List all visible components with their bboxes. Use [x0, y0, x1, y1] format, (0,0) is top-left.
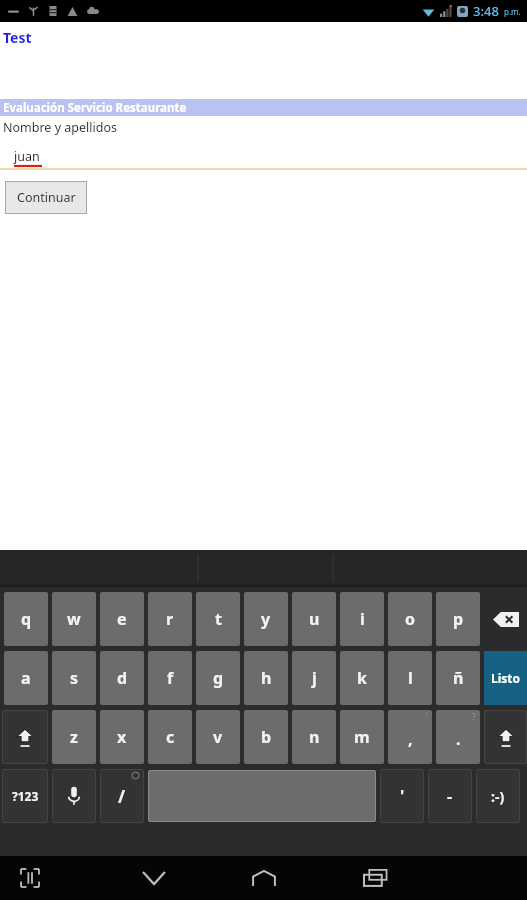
button[interactable]: f	[148, 651, 192, 705]
button[interactable]: Shift	[2, 710, 48, 764]
button[interactable]: y	[244, 592, 288, 646]
staticText: '	[400, 785, 405, 807]
staticText: .	[456, 728, 461, 750]
button[interactable]: m	[340, 710, 384, 764]
button[interactable]: Listo	[484, 651, 527, 705]
staticText: ñ	[453, 667, 464, 689]
staticText: /	[118, 785, 126, 808]
button[interactable]: '	[388, 710, 432, 764]
staticText: m	[354, 726, 370, 748]
button[interactable]: a	[4, 651, 48, 705]
staticText: h	[261, 667, 272, 689]
staticText: n	[309, 726, 320, 748]
staticText: x	[117, 726, 127, 748]
staticText: :-)	[491, 787, 505, 806]
staticText: d	[117, 667, 128, 689]
staticText: '	[426, 711, 428, 722]
button[interactable]: u	[292, 592, 336, 646]
staticText: u	[309, 608, 320, 630]
button[interactable]: d	[100, 651, 144, 705]
staticText: b	[261, 726, 272, 748]
button[interactable]: k	[340, 651, 384, 705]
staticText: f	[167, 667, 174, 689]
button[interactable]: Backspace	[484, 592, 527, 646]
staticText: i	[360, 608, 365, 630]
button[interactable]: ?	[436, 710, 480, 764]
staticText: j	[312, 667, 317, 689]
button[interactable]: b	[244, 710, 288, 764]
staticText: p	[453, 608, 464, 630]
staticText: k	[357, 667, 367, 689]
staticText: s	[70, 667, 79, 689]
staticText: ?	[472, 711, 476, 722]
button[interactable]: :-)	[476, 769, 520, 823]
button[interactable]: Recent apps	[352, 856, 400, 900]
button[interactable]: Screenshot	[10, 858, 50, 898]
button[interactable]: z	[52, 710, 96, 764]
button[interactable]: w	[52, 592, 96, 646]
button[interactable]: p	[436, 592, 480, 646]
staticText: ?123	[12, 788, 39, 804]
staticText: p.m.	[504, 6, 521, 17]
button[interactable]: Hide keyboard	[130, 856, 178, 900]
staticText: e	[117, 608, 127, 630]
staticText: 3:48	[473, 2, 499, 20]
button[interactable]: i	[340, 592, 384, 646]
staticText: c	[166, 726, 175, 748]
staticText: w	[67, 608, 81, 630]
button[interactable]: n	[292, 710, 336, 764]
button[interactable]: Home	[240, 856, 288, 900]
staticText: y	[261, 608, 271, 630]
staticText: Nombre y apellidos	[3, 119, 117, 136]
button[interactable]: /	[100, 769, 144, 823]
button[interactable]: x	[100, 710, 144, 764]
staticText: r	[166, 608, 174, 630]
button[interactable]: Space	[148, 770, 376, 822]
button[interactable]: ñ	[436, 651, 480, 705]
staticText: Continuar	[17, 189, 76, 206]
button[interactable]: c	[148, 710, 192, 764]
staticText: t	[215, 608, 222, 630]
button[interactable]: ?123	[2, 769, 48, 823]
button[interactable]: v	[196, 710, 240, 764]
button[interactable]: g	[196, 651, 240, 705]
button[interactable]: Continuar	[5, 181, 87, 214]
button[interactable]: Shift	[484, 710, 527, 764]
staticText: q	[21, 608, 32, 630]
button[interactable]: h	[244, 651, 288, 705]
button[interactable]: -	[428, 769, 472, 823]
staticText: ,	[408, 728, 413, 750]
button[interactable]: '	[380, 769, 424, 823]
button[interactable]: j	[292, 651, 336, 705]
button[interactable]: q	[4, 592, 48, 646]
button[interactable]: Voice input	[52, 769, 96, 823]
staticText: Listo	[491, 670, 521, 686]
staticText: l	[408, 667, 413, 689]
button[interactable]: o	[388, 592, 432, 646]
staticText: v	[213, 726, 223, 748]
staticText: z	[70, 726, 78, 748]
staticText: a	[21, 667, 31, 689]
staticText: -	[447, 785, 453, 807]
button[interactable]: r	[148, 592, 192, 646]
button[interactable]: s	[52, 651, 96, 705]
staticText: o	[405, 608, 416, 630]
staticText: g	[213, 667, 224, 689]
staticText: juan	[14, 148, 40, 165]
button[interactable]: e	[100, 592, 144, 646]
button[interactable]: t	[196, 592, 240, 646]
button[interactable]: l	[388, 651, 432, 705]
staticText: Evaluación Servicio Restaurante	[3, 100, 187, 116]
staticText: Test	[3, 28, 32, 47]
